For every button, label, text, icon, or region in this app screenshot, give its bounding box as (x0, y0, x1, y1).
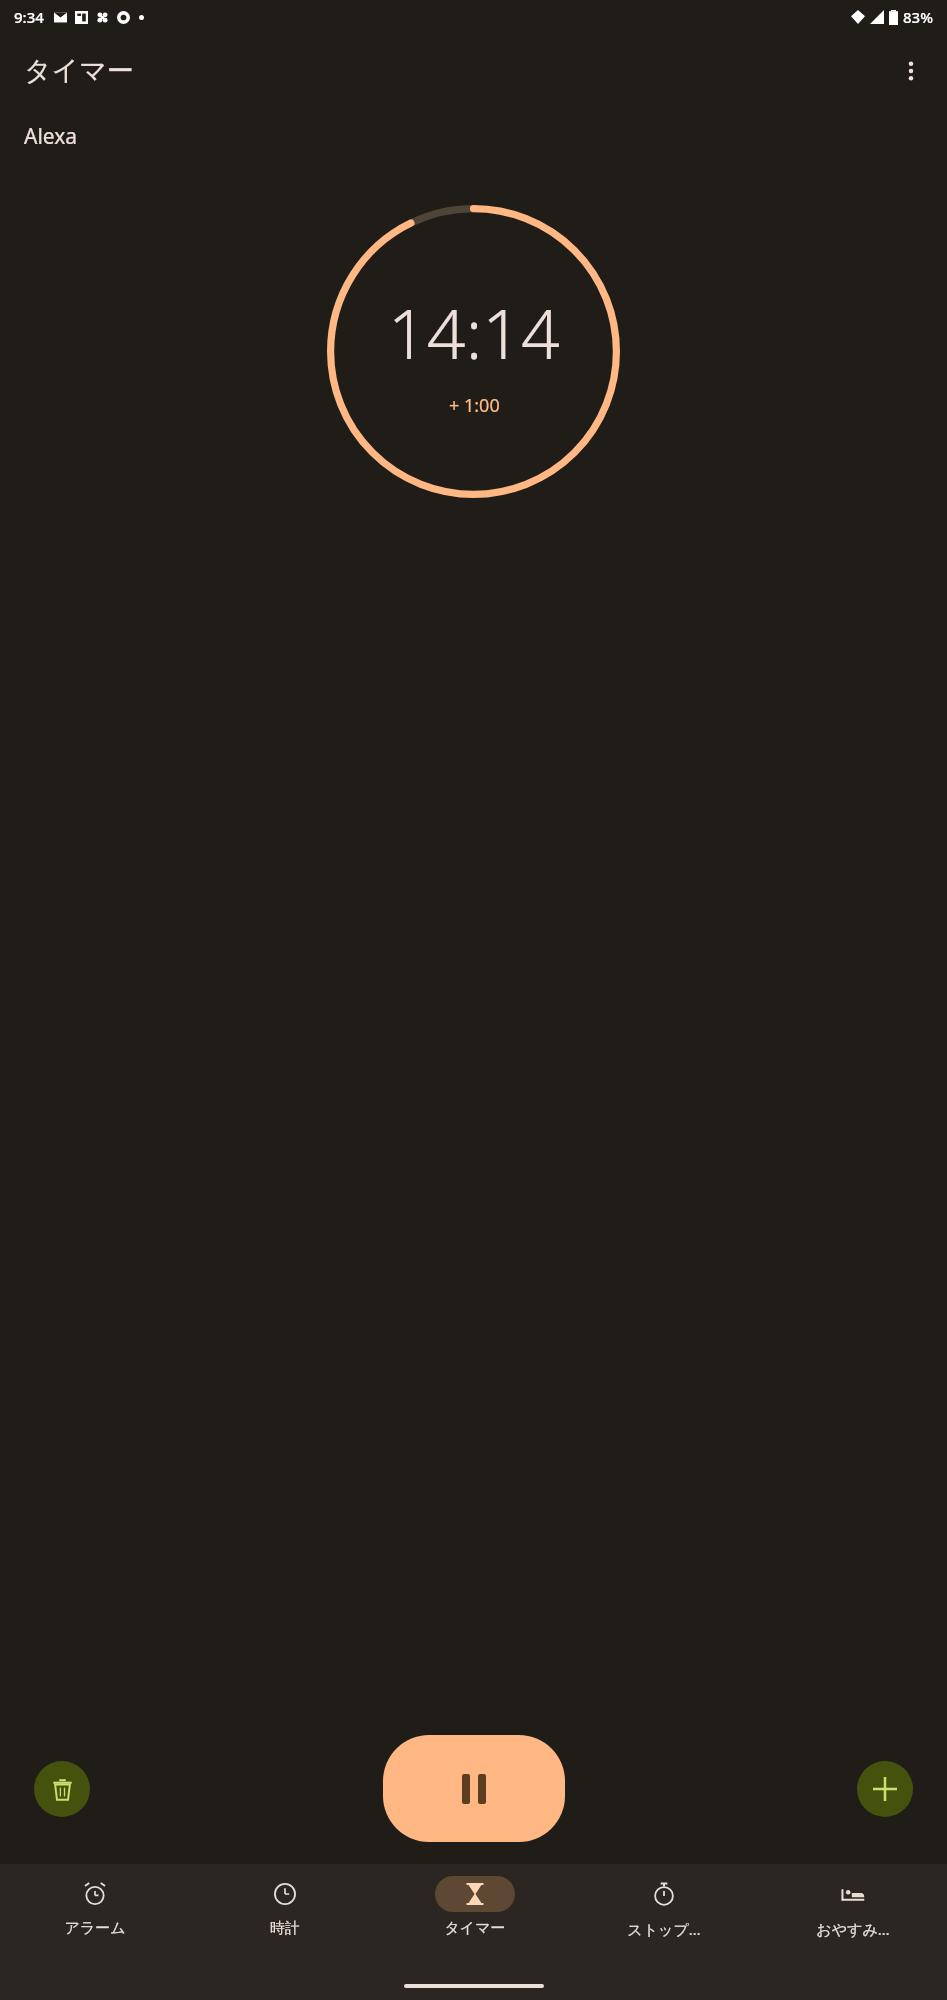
button[interactable]: アラーム (0, 1874, 190, 1938)
staticText: ストップ… (627, 1919, 701, 1939)
staticText: 9:34 (14, 7, 44, 27)
staticText: タイマー (24, 54, 134, 88)
staticText: タイマー (444, 1919, 506, 1938)
staticText: おやすみ… (816, 1919, 890, 1939)
button[interactable]: 削除 (34, 1761, 90, 1817)
staticText: 時計 (270, 1919, 300, 1938)
button[interactable]: 一時停止 (383, 1735, 565, 1842)
staticText: 83% (903, 7, 933, 27)
staticText: 14:14 (388, 286, 560, 379)
button[interactable]: その他のオプション (887, 47, 935, 95)
button[interactable]: 時計 (190, 1874, 380, 1938)
staticText: + 1:00 (449, 393, 500, 418)
button[interactable]: 1分追加 (857, 1761, 913, 1817)
staticText: Alexa (24, 122, 78, 151)
staticText: アラーム (64, 1919, 126, 1938)
button[interactable]: おやすみ… (758, 1874, 947, 1939)
button[interactable]: ストップ… (569, 1874, 758, 1939)
button[interactable]: タイマー (380, 1874, 569, 1938)
